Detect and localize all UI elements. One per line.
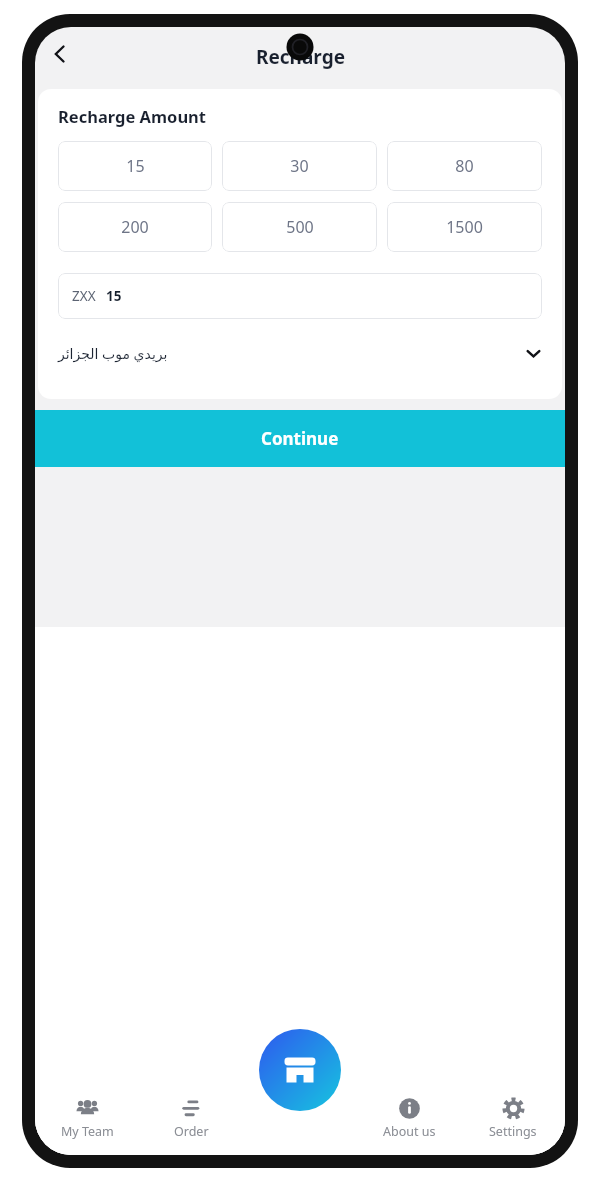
staticText: About us — [383, 1123, 436, 1140]
staticText: Settings — [489, 1123, 537, 1140]
button[interactable]: 15 — [58, 141, 212, 191]
button[interactable]: 30 — [222, 141, 377, 191]
button[interactable]: 1500 — [387, 202, 542, 252]
button[interactable]: ZXX — [58, 273, 542, 319]
staticText: 1500 — [446, 216, 483, 238]
button[interactable]: 500 — [222, 202, 377, 252]
staticText: 80 — [455, 155, 474, 177]
staticText: 200 — [121, 216, 149, 238]
button[interactable]: 200 — [58, 202, 212, 252]
button[interactable]: Back — [38, 32, 82, 76]
staticText: Recharge Amount — [58, 105, 207, 127]
staticText: Recharge — [256, 44, 345, 70]
staticText: My Team — [61, 1123, 114, 1140]
button[interactable]: Order — [139, 1081, 243, 1155]
button[interactable]: My Team — [35, 1081, 139, 1155]
button[interactable]: Shop — [259, 1038, 341, 1120]
staticText: Continue — [261, 427, 339, 450]
staticText: ZXX — [72, 287, 96, 305]
staticText: بريدي موب الجزائر — [58, 344, 168, 363]
button[interactable]: بريدي موب الجزائر — [58, 337, 542, 369]
button[interactable]: Settings — [461, 1081, 565, 1155]
staticText: 15 — [126, 155, 145, 177]
button[interactable]: 80 — [387, 141, 542, 191]
button[interactable]: About us — [357, 1081, 461, 1155]
staticText: 15 — [106, 287, 122, 305]
staticText: 500 — [286, 216, 314, 238]
button[interactable]: Continue — [35, 410, 565, 467]
staticText: Order — [174, 1123, 209, 1140]
staticText: 30 — [290, 155, 309, 177]
